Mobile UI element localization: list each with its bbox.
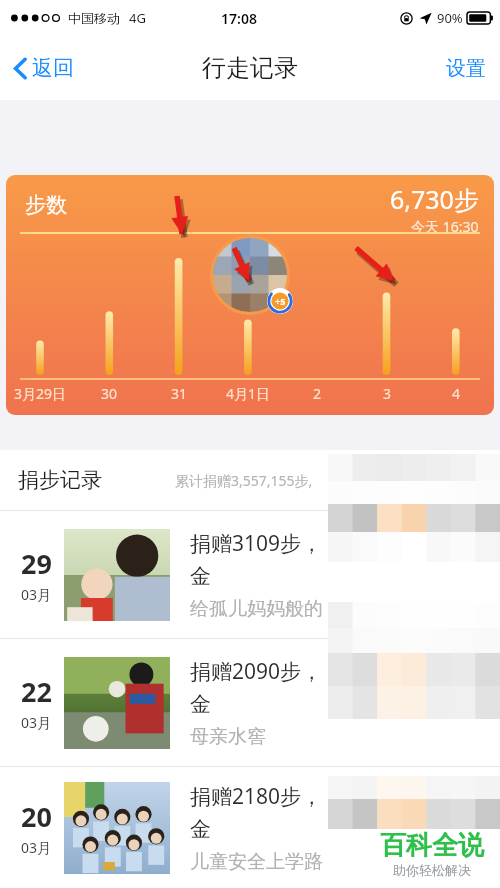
staticText: 4G [129,9,146,27]
staticText: 母亲水窖 [190,725,266,749]
staticText: 31 [145,384,213,403]
staticText: 29 [21,545,52,582]
staticText: 捐赠3109步， [190,529,323,558]
staticText: 03月 [21,713,52,732]
staticText: 金 [190,563,211,589]
button[interactable]: 步数 [6,175,494,415]
staticText: 6,730步 [390,182,479,216]
staticText: 金 [190,816,211,842]
staticText: 金 [190,691,211,717]
staticText: 03月 [21,585,52,604]
staticText: 22 [21,673,52,710]
staticText: 4 [422,384,490,403]
staticText: 步数 [25,192,67,218]
staticText: 20 [21,798,52,835]
staticText: 行走记录 [202,53,298,83]
button[interactable]: 22 [0,639,500,766]
staticText: 累计捐赠3,557,155步, [175,471,313,490]
staticText: 捐赠2090步， [190,657,323,686]
staticText: 30 [75,384,143,403]
button[interactable]: 29 [0,511,500,638]
staticText: 2 [283,384,351,403]
staticText: 3月29日 [6,384,74,403]
staticText: 3 [353,384,421,403]
staticText: 中国移动 [68,10,120,26]
staticText: 4月1日 [214,384,282,403]
staticText: 17:08 [221,9,257,28]
staticText: 捐赠2180步， [190,782,323,811]
staticText: +5 [275,295,286,307]
staticText: 返回 [32,55,74,81]
staticText: 03月 [21,838,52,857]
staticText: 助你轻松解决 [393,862,471,878]
staticText: 给孤儿妈妈般的 [190,597,323,621]
button[interactable]: 设置 [432,45,500,92]
staticText: 捐步记录 [18,467,102,493]
staticText: 儿童安全上学路 [190,850,323,874]
button[interactable]: 返回 [0,46,88,90]
button[interactable]: 20 [0,767,500,888]
staticText: 90% [437,9,463,27]
staticText: 今天 16:30 [411,217,479,236]
staticText: 百科全说 [380,829,484,862]
